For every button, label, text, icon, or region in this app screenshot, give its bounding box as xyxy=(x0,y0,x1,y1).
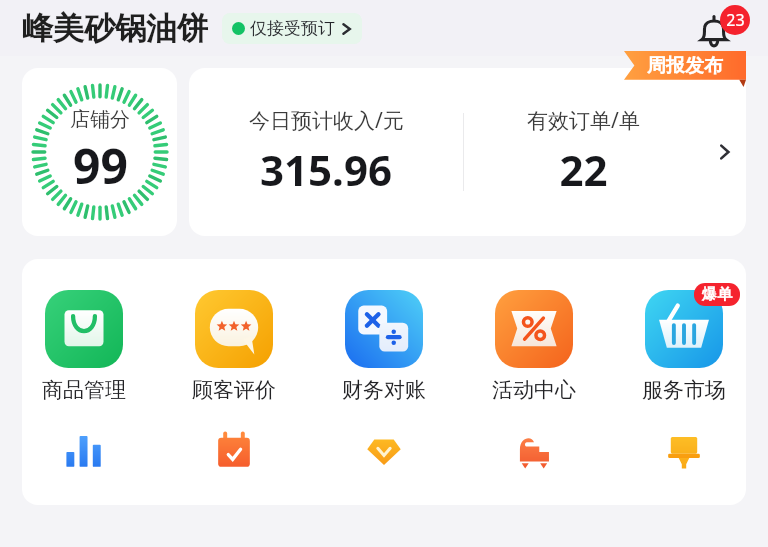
staticText: 周报发布 xyxy=(647,54,723,78)
staticText: 财务对账 xyxy=(342,377,426,403)
button[interactable]: 商品管理 xyxy=(22,283,146,405)
button[interactable]: 活动中心 xyxy=(472,283,596,405)
staticText: 爆单 xyxy=(702,285,732,304)
staticText: 22 xyxy=(559,141,608,198)
staticText: 315.96 xyxy=(260,141,392,198)
staticText: 峰美砂锅油饼 xyxy=(22,9,208,48)
staticText: 23 xyxy=(726,9,745,31)
staticText: 顾客评价 xyxy=(192,377,276,403)
button[interactable]: 周报发布 xyxy=(624,51,746,87)
staticText: 服务市场 xyxy=(642,377,726,403)
button[interactable]: 店铺分 xyxy=(22,68,177,236)
button[interactable]: 仅接受预订 xyxy=(222,13,362,44)
button[interactable]: 会员权益 xyxy=(322,423,446,479)
staticText: 今日预计收入/元 xyxy=(249,106,404,135)
staticText: 仅接受预订 xyxy=(250,18,335,39)
staticText: 活动中心 xyxy=(492,377,576,403)
button[interactable]: 配送管理 xyxy=(472,423,596,479)
button[interactable]: Notifications, 23 unread xyxy=(696,5,750,51)
staticText: 有效订单/单 xyxy=(527,106,640,135)
button[interactable]: 店铺装修 xyxy=(622,423,746,479)
button[interactable]: 财务对账 xyxy=(322,283,446,405)
button[interactable]: 数据统计 xyxy=(22,423,146,479)
staticText: 店铺分 xyxy=(70,107,130,132)
button[interactable]: 预订管理 xyxy=(172,423,296,479)
button[interactable]: 爆单 xyxy=(622,283,746,405)
staticText: 商品管理 xyxy=(42,377,126,403)
staticText: 99 xyxy=(73,133,128,198)
button[interactable]: 顾客评价 xyxy=(172,283,296,405)
button[interactable]: 今日预计收入/元 xyxy=(189,68,746,236)
